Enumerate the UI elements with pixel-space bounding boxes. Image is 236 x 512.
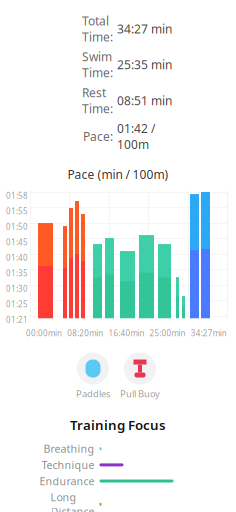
staticText: 01:45 bbox=[6, 237, 28, 247]
staticText: Pace (min / 100m) bbox=[67, 166, 168, 182]
staticText: Long Distance bbox=[50, 490, 94, 512]
staticText: Pace: bbox=[83, 128, 113, 144]
staticText: 01:42 / 100m bbox=[117, 120, 155, 152]
staticText: Endurance bbox=[39, 474, 94, 488]
staticText: 08:51 min bbox=[117, 93, 172, 108]
staticText: 08:20min bbox=[67, 328, 103, 338]
staticText: Technique bbox=[41, 458, 94, 472]
staticText: 34:27min bbox=[191, 328, 227, 338]
staticText: Breathing bbox=[43, 442, 94, 456]
staticText: 01:55 bbox=[6, 206, 28, 216]
staticText: Rest Time: bbox=[82, 85, 113, 116]
staticText: 25:00min bbox=[150, 328, 186, 338]
staticText: Swim Time: bbox=[82, 49, 113, 81]
staticText: 34:27 min bbox=[117, 21, 172, 37]
staticText: 01:58 bbox=[6, 190, 28, 201]
staticText: 00:00min bbox=[26, 328, 62, 338]
button[interactable]: Pull Buoy bbox=[120, 352, 160, 400]
staticText: Training Focus bbox=[70, 416, 166, 434]
staticText: 01:35 bbox=[6, 268, 28, 278]
staticText: 01:30 bbox=[6, 283, 28, 294]
staticText: Pull Buoy bbox=[120, 387, 160, 400]
staticText: Total Time: bbox=[82, 13, 113, 45]
staticText: 01:50 bbox=[6, 221, 28, 232]
staticText: 25:35 min bbox=[117, 57, 172, 73]
staticText: 01:40 bbox=[6, 252, 28, 263]
staticText: 16:40min bbox=[108, 328, 144, 338]
button[interactable]: Paddles bbox=[76, 352, 110, 400]
staticText: 01:25 bbox=[6, 299, 28, 309]
staticText: 01:21 bbox=[6, 314, 28, 325]
staticText: Paddles bbox=[76, 387, 110, 400]
